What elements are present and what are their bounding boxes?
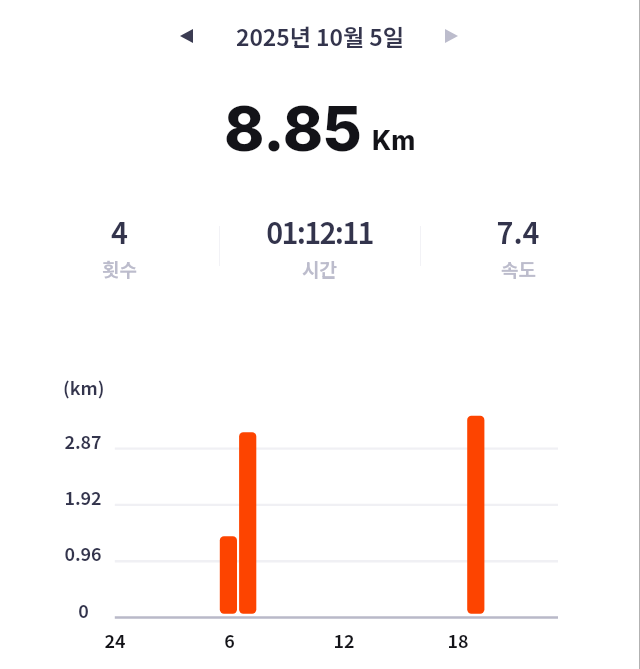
staticText: 12 — [333, 627, 355, 653]
button[interactable]: 2025년 10월 5일 — [236, 19, 404, 52]
staticText: 8.85 — [224, 92, 362, 166]
button[interactable]: 4 — [29, 210, 209, 283]
staticText: 6 — [224, 627, 235, 653]
staticText: 횟수 — [102, 255, 137, 283]
button[interactable]: 7.4 — [428, 210, 608, 283]
staticText: (km) — [63, 374, 105, 400]
staticText: 0.96 — [64, 540, 102, 566]
button[interactable]: 01:12:11 — [229, 210, 409, 283]
staticText: 2025년 10월 5일 — [236, 19, 404, 52]
staticText: 18 — [447, 627, 469, 653]
staticText: 속도 — [501, 255, 536, 283]
staticText: 0 — [78, 597, 89, 623]
staticText: 24 — [104, 627, 126, 653]
staticText: Km — [372, 125, 416, 156]
staticText: 시간 — [302, 255, 337, 283]
staticText: 7.4 — [496, 210, 540, 252]
staticText: 2.87 — [64, 428, 102, 454]
staticText: 1.92 — [64, 484, 102, 510]
staticText: 01:12:11 — [266, 210, 373, 252]
button[interactable]: Previous day — [172, 21, 201, 50]
button[interactable]: Next day — [437, 21, 466, 50]
staticText: 4 — [111, 210, 128, 252]
